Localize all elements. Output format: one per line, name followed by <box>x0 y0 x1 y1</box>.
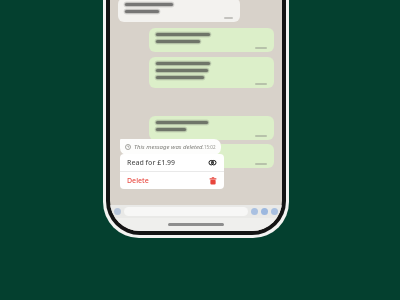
button[interactable] <box>149 116 274 140</box>
button[interactable]: Read for £1.99 <box>120 154 224 171</box>
button[interactable]: Attach <box>251 208 258 215</box>
button[interactable] <box>149 28 274 52</box>
staticText: Read for £1.99 <box>127 158 176 168</box>
staticText: This message was deleted. <box>134 143 204 151</box>
staticText: Delete <box>127 176 149 186</box>
button[interactable] <box>149 57 274 88</box>
button[interactable]: Camera <box>261 208 268 215</box>
staticText: 15:02 <box>204 144 216 150</box>
button[interactable] <box>149 144 274 168</box>
button[interactable]: Voice <box>271 208 278 215</box>
button[interactable]: Emoji <box>114 208 121 215</box>
button[interactable] <box>118 0 240 22</box>
button[interactable]: This message was deleted. <box>120 139 221 155</box>
button[interactable]: Delete <box>120 172 224 189</box>
